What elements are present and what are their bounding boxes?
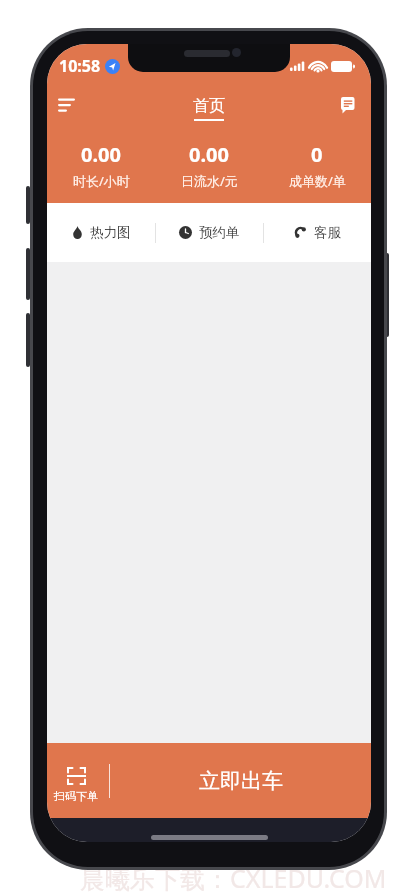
- staticText: 时长/小时: [73, 172, 130, 190]
- staticText: 预约单: [199, 224, 240, 241]
- staticText: 扫码下单: [54, 789, 98, 803]
- staticText: 立即出车: [199, 768, 283, 794]
- staticText: 10:58: [59, 55, 101, 77]
- staticText: 日流水/元: [181, 172, 238, 190]
- staticText: 客服: [314, 224, 341, 241]
- staticText: 0.00: [81, 141, 121, 168]
- staticText: 热力图: [90, 224, 131, 241]
- staticText: 0: [311, 141, 323, 168]
- staticText: 成单数/单: [289, 172, 346, 190]
- staticText: 晨曦乐下载：CXLEDU.COM: [80, 861, 387, 895]
- staticText: 首页: [193, 96, 225, 116]
- staticText: 0.00: [189, 141, 229, 168]
